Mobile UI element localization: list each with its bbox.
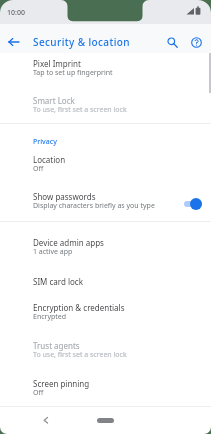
staticText: Show passwords <box>33 191 96 202</box>
button[interactable] <box>38 413 54 429</box>
staticText: Display characters briefly as you type <box>33 201 155 211</box>
button[interactable] <box>163 33 181 51</box>
staticText: Device admin apps <box>33 237 104 248</box>
staticText: Encrypted <box>33 312 67 322</box>
staticText: 10:00 <box>7 8 25 18</box>
button[interactable]: Location <box>0 150 211 187</box>
staticText: SIM card lock <box>33 276 83 287</box>
button[interactable]: Encryption & credentials <box>0 295 211 332</box>
staticText: Encryption & credentials <box>33 302 125 313</box>
button[interactable]: SIM card lock <box>0 268 211 295</box>
staticText: Smart Lock <box>33 95 75 106</box>
staticText: Privacy <box>33 137 57 147</box>
button[interactable]: Trust agents <box>0 332 211 369</box>
staticText: Pixel Imprint <box>33 58 81 69</box>
button[interactable]: Show passwords <box>0 187 211 221</box>
staticText: Off <box>33 164 44 174</box>
staticText: Screen pinning <box>33 378 90 389</box>
button[interactable] <box>7 35 21 49</box>
staticText: Location <box>33 154 66 165</box>
button[interactable]: Pixel Imprint <box>0 53 211 90</box>
staticText: To use, first set a screen lock <box>33 350 127 360</box>
button[interactable] <box>97 418 114 423</box>
button[interactable]: Device admin apps <box>0 231 211 268</box>
button[interactable] <box>187 33 205 51</box>
staticText: To use, first set a screen lock <box>33 105 127 115</box>
staticText: Security & location <box>33 35 130 49</box>
button[interactable]: Smart Lock <box>0 90 211 123</box>
button[interactable]: Screen pinning <box>0 369 211 406</box>
staticText: Tap to set up fingerprint <box>33 68 113 78</box>
staticText: Off <box>33 388 44 398</box>
staticText: Trust agents <box>33 340 80 351</box>
staticText: 1 active app <box>33 247 73 257</box>
